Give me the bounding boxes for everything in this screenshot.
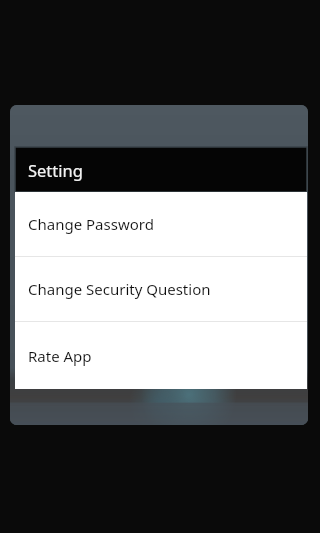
staticText: Setting bbox=[28, 159, 83, 181]
staticText: Change Security Question bbox=[28, 279, 211, 299]
staticText: Change Password bbox=[28, 214, 154, 234]
button[interactable]: Change Security Question bbox=[15, 257, 307, 321]
staticText: Rate App bbox=[28, 346, 92, 366]
button[interactable]: Change Password bbox=[15, 192, 307, 256]
button[interactable]: Rate App bbox=[15, 322, 307, 389]
